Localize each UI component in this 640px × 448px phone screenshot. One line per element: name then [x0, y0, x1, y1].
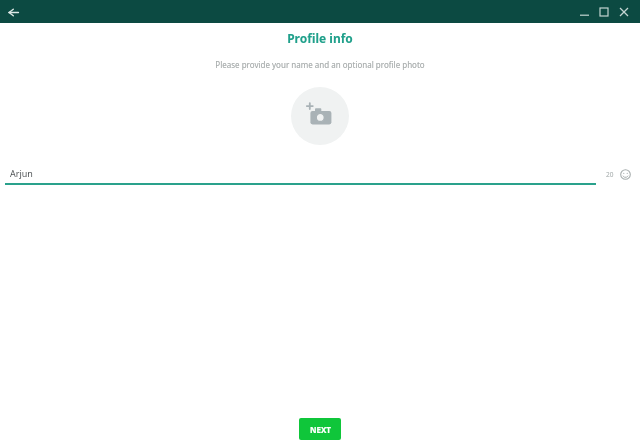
- button[interactable]: NEXT: [299, 418, 341, 440]
- button[interactable]: Maximize: [594, 2, 614, 22]
- button[interactable]: Emoji: [619, 168, 632, 181]
- staticText: NEXT: [310, 424, 331, 435]
- button[interactable]: Minimize: [574, 2, 594, 22]
- staticText: Please provide your name and an optional…: [0, 59, 640, 70]
- button[interactable]: Add profile photo: [291, 87, 349, 145]
- button[interactable]: Arjun: [10, 167, 33, 179]
- staticText: 20: [606, 170, 614, 179]
- button[interactable]: Close: [614, 2, 634, 22]
- staticText: Profile info: [0, 30, 640, 46]
- button[interactable]: Back: [4, 3, 22, 21]
